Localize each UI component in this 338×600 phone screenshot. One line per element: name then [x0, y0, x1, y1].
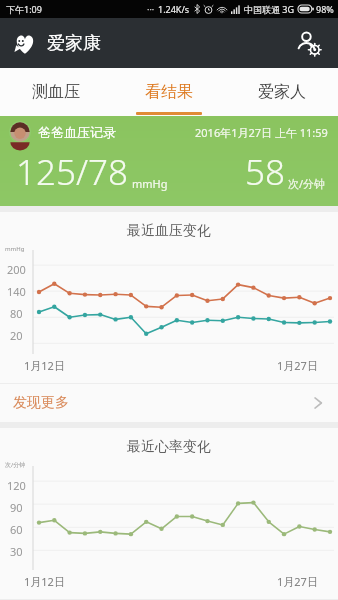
button[interactable]: 看结果 [112, 68, 225, 116]
staticText: 最近血压变化 [127, 222, 211, 240]
staticText: 爸爸血压记录 [38, 124, 116, 140]
staticText: 30 [10, 544, 23, 559]
staticText: 90 [10, 500, 23, 515]
staticText: 125/78 [16, 148, 129, 196]
staticText: 1.24K/s [158, 3, 190, 15]
staticText: ··· [147, 3, 155, 15]
staticText: 爱家人 [258, 82, 306, 102]
button[interactable]: 爸爸血压记录 [0, 116, 338, 206]
staticText: 2016年1月27日 上午 11:59 [195, 125, 328, 140]
staticText: 1月27日 [277, 358, 318, 373]
staticText: 发现更多 [13, 394, 69, 412]
staticText: 次/分钟 [5, 461, 26, 469]
button[interactable]: 测血压 [0, 68, 112, 116]
staticText: 测血压 [32, 82, 80, 102]
staticText: 98% [316, 3, 334, 15]
staticText: 下午1:09 [6, 3, 42, 15]
staticText: 1月12日 [24, 574, 65, 589]
staticText: 120 [7, 478, 26, 493]
staticText: 60 [10, 522, 23, 537]
staticText: 1月27日 [277, 574, 318, 589]
button[interactable]: Account settings [286, 21, 330, 65]
button[interactable]: 发现更多 [0, 384, 338, 422]
staticText: 1月12日 [24, 358, 65, 373]
staticText: 爱家康 [47, 32, 101, 55]
staticText: 80 [10, 306, 23, 321]
staticText: 次/分钟 [288, 176, 326, 191]
staticText: 中国联通 3G [244, 3, 295, 15]
staticText: 58 [245, 148, 285, 196]
staticText: 20 [10, 328, 23, 343]
staticText: mmHg [132, 176, 168, 191]
staticText: 200 [7, 262, 26, 277]
button[interactable]: 爱家人 [225, 68, 338, 116]
staticText: 最近心率变化 [127, 438, 211, 456]
staticText: mmHg [5, 245, 25, 253]
staticText: 看结果 [145, 82, 193, 102]
staticText: 140 [7, 284, 26, 299]
